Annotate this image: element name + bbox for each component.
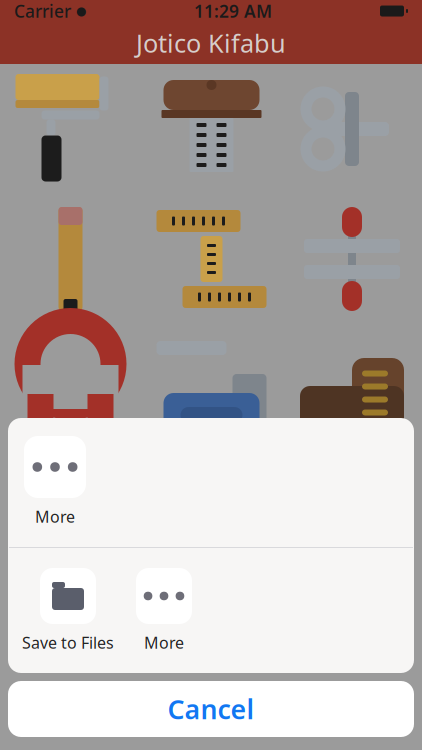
staticText: Cancel bbox=[167, 691, 254, 727]
button[interactable]: Cancel bbox=[8, 681, 414, 737]
staticText: Jotico Kifabu bbox=[136, 26, 286, 60]
button[interactable]: More bbox=[136, 568, 192, 653]
staticText: More bbox=[35, 506, 75, 527]
button[interactable]: More bbox=[24, 436, 86, 527]
staticText: ● bbox=[76, 4, 86, 18]
staticText: Carrier bbox=[14, 0, 71, 22]
staticText: Save to Files bbox=[22, 632, 114, 653]
staticText: More bbox=[144, 632, 184, 653]
staticText: 11:29 AM bbox=[194, 0, 272, 22]
button[interactable]: Save to Files bbox=[22, 568, 114, 653]
